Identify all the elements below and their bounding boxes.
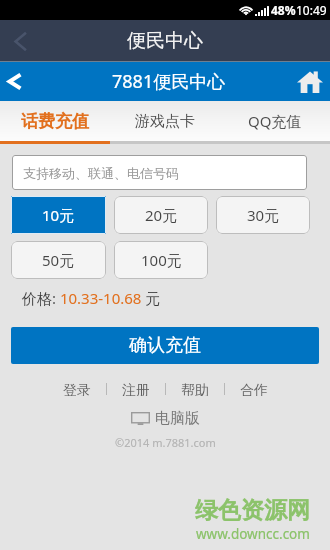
button[interactable]: 话费充值 [0,101,110,141]
button[interactable]: 20元 [114,196,208,234]
button[interactable]: 合作 [239,378,269,400]
staticText: ©2014 m.7881.com [115,435,216,450]
staticText: 帮助 [181,382,209,396]
staticText: 10元 [42,205,75,225]
button[interactable]: Back [0,62,29,101]
staticText: 20元 [145,205,178,225]
staticText: 10:49 [296,2,327,18]
staticText: 登录 [63,382,91,396]
staticText: 注册 [122,382,150,396]
staticText: www.downcc.com [196,525,310,543]
button[interactable]: 电脑版 [0,409,330,428]
button[interactable]: 确认充值 [11,327,319,364]
staticText: 绿色资源网 [195,496,310,525]
button[interactable]: 支持移动、联通、电信号码 [12,155,307,190]
staticText: 30元 [247,205,280,225]
staticText: 支持移动、联通、电信号码 [23,165,179,181]
staticText: 确认充值 [129,334,201,357]
button[interactable]: 10元 [11,196,106,234]
button[interactable]: 100元 [114,241,208,279]
button[interactable]: 30元 [216,196,310,234]
staticText: QQ充值 [248,111,302,131]
staticText: 话费充值 [21,111,89,132]
button[interactable]: Back [0,21,40,61]
button[interactable]: 帮助 [180,378,210,400]
button[interactable]: QQ充值 [220,101,330,141]
button[interactable]: 登录 [62,378,92,400]
staticText: 便民中心 [127,29,203,53]
button[interactable]: 游戏点卡 [110,101,220,141]
button[interactable]: 50元 [11,241,106,279]
staticText: 游戏点卡 [135,112,195,131]
staticText: 7881便民中心 [112,69,226,94]
staticText: 100元 [141,250,182,270]
button[interactable]: Home [290,62,330,101]
staticText: 价格: 10.33-10.68 元 [22,288,161,308]
staticText: 合作 [240,382,268,396]
button[interactable]: 注册 [121,378,151,400]
staticText: 电脑版 [155,409,200,428]
staticText: 50元 [42,250,75,270]
staticText: 48% [271,2,296,18]
